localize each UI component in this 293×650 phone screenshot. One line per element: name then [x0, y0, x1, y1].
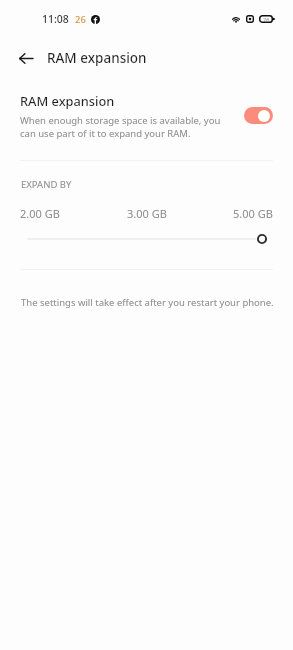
staticText: When enough storage space is available, … [20, 114, 232, 140]
staticText: 11:08 [42, 12, 69, 26]
button[interactable]: Back [13, 45, 39, 71]
staticText: The settings will take effect after you … [21, 296, 274, 309]
staticText: 5.00 GB [233, 206, 273, 221]
staticText: 3.00 GB [127, 206, 167, 221]
staticText: 26 [75, 13, 86, 26]
button[interactable]: RAM expansion [0, 84, 293, 152]
button[interactable]: RAM size slider [0, 228, 293, 250]
staticText: 2.00 GB [20, 206, 60, 221]
button[interactable]: RAM expansion toggle [244, 107, 273, 124]
staticText: 26 [263, 16, 270, 23]
staticText: EXPAND BY [21, 178, 72, 191]
staticText: RAM expansion [20, 92, 115, 109]
staticText: RAM expansion [47, 49, 147, 67]
